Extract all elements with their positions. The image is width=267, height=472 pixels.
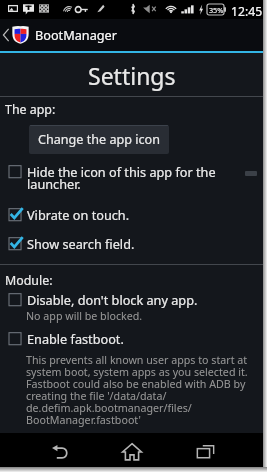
button[interactable]: Vibrate on touch. (0, 206, 263, 223)
staticText: 35% (209, 5, 224, 15)
button[interactable]: Hide the icon of this app for the launch… (0, 163, 263, 193)
staticText: Enable fastboot. (27, 330, 124, 347)
button[interactable]: Enable fastboot. (0, 330, 263, 428)
button[interactable]: Change the app icon (29, 125, 169, 154)
staticText: No app will be blocked. (26, 309, 143, 324)
button[interactable]: Home (96, 433, 168, 467)
staticText: Settings (88, 60, 176, 91)
staticText: This prevents all known user apps to sta… (26, 353, 251, 428)
staticText: Vibrate on touch. (27, 206, 130, 223)
staticText: Disable, don't block any app. (27, 291, 198, 308)
button[interactable]: Show search field. (0, 235, 263, 252)
staticText: 12:45 (231, 3, 263, 20)
button[interactable]: Recent apps (169, 433, 241, 467)
staticText: Hide the icon of this app for the launch… (27, 163, 223, 193)
staticText: The app: (5, 101, 56, 118)
button[interactable]: Back (24, 433, 96, 467)
staticText: BootManager (35, 26, 117, 43)
button[interactable]: BootManager (0, 19, 263, 51)
staticText: Module: (5, 272, 53, 289)
button[interactable]: Disable, don't block any app. (0, 291, 263, 324)
staticText: Show search field. (27, 235, 135, 252)
staticText: Change the app icon (38, 131, 160, 148)
